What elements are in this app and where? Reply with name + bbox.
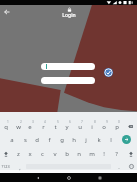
button[interactable]: Submit xyxy=(104,68,113,77)
staticText: , xyxy=(19,164,21,172)
staticText: m xyxy=(89,150,95,158)
staticText: . xyxy=(118,163,120,171)
button[interactable]: Home xyxy=(64,173,73,182)
button[interactable]: ! xyxy=(98,147,110,161)
button[interactable]: x xyxy=(24,147,36,161)
staticText: e xyxy=(28,123,32,131)
staticText: Login xyxy=(62,12,76,19)
staticText: y xyxy=(65,123,69,131)
staticText: w xyxy=(16,123,21,131)
staticText: k xyxy=(97,136,101,144)
staticText: p xyxy=(115,123,119,131)
button[interactable]: z xyxy=(12,147,24,161)
staticText: q xyxy=(4,123,8,131)
staticText: 2 xyxy=(20,120,22,123)
button[interactable]: r xyxy=(37,120,49,134)
button[interactable]: g xyxy=(56,133,68,147)
button[interactable]: v xyxy=(49,147,61,161)
staticText: j xyxy=(85,136,87,144)
button[interactable]: Backspace xyxy=(124,119,137,133)
button[interactable]: Shift xyxy=(0,147,12,161)
button[interactable]: n xyxy=(73,147,85,161)
button[interactable]: ?123 xyxy=(0,159,12,173)
button[interactable]: f xyxy=(43,133,55,147)
button[interactable]: k xyxy=(93,133,105,147)
button[interactable]: y xyxy=(61,120,73,134)
staticText: i xyxy=(91,123,93,131)
staticText: x xyxy=(28,150,32,158)
button[interactable]: Navigate up xyxy=(1,6,12,17)
button[interactable] xyxy=(41,63,95,70)
button[interactable] xyxy=(41,77,95,84)
staticText: r xyxy=(42,123,45,131)
button[interactable]: . xyxy=(114,160,123,174)
button[interactable]: u xyxy=(74,120,86,134)
button[interactable]: d xyxy=(31,133,43,147)
button[interactable]: h xyxy=(68,133,80,147)
button[interactable]: t xyxy=(49,120,61,134)
staticText: l xyxy=(110,136,112,144)
staticText: f xyxy=(48,136,51,144)
staticText: t xyxy=(54,123,57,131)
staticText: o xyxy=(102,123,106,131)
staticText: h xyxy=(72,136,76,144)
staticText: s xyxy=(24,136,27,144)
button[interactable]: i xyxy=(86,120,98,134)
staticText: u xyxy=(78,123,82,131)
staticText: 3 xyxy=(32,120,34,123)
staticText: ? xyxy=(115,150,118,158)
staticText: z xyxy=(17,150,20,158)
staticText: v xyxy=(53,150,57,158)
staticText: a xyxy=(10,136,14,144)
button[interactable]: e xyxy=(24,120,36,134)
button[interactable]: p xyxy=(111,120,123,134)
button[interactable]: o xyxy=(98,120,110,134)
staticText: 5 xyxy=(57,120,59,123)
button[interactable]: j xyxy=(80,133,92,147)
button[interactable]: Emoji xyxy=(125,159,137,173)
staticText: d xyxy=(35,136,39,144)
button[interactable]: Delete xyxy=(124,147,137,161)
staticText: ?123 xyxy=(1,164,10,169)
staticText: n xyxy=(77,150,81,158)
staticText: 7 xyxy=(81,120,83,123)
button[interactable]: l xyxy=(105,133,117,147)
button[interactable]: Enter xyxy=(122,135,131,144)
button[interactable]: a xyxy=(6,133,18,147)
staticText: g xyxy=(60,136,64,144)
staticText: c xyxy=(41,150,44,158)
staticText: 4 xyxy=(44,120,46,123)
staticText: b xyxy=(65,150,69,158)
button[interactable]: , xyxy=(15,161,24,175)
button[interactable]: c xyxy=(36,147,48,161)
staticText: 9 xyxy=(106,120,108,123)
button[interactable]: Back xyxy=(33,173,42,182)
staticText: 1 xyxy=(7,120,9,123)
button[interactable]: ? xyxy=(110,147,122,161)
button[interactable]: Recent apps xyxy=(95,173,104,182)
button[interactable]: b xyxy=(61,147,73,161)
button[interactable]: m xyxy=(86,147,98,161)
staticText: 6 xyxy=(69,120,71,123)
button[interactable]: s xyxy=(19,133,31,147)
button[interactable]: q xyxy=(0,120,12,134)
button[interactable]: w xyxy=(12,120,24,134)
staticText: ! xyxy=(103,150,105,158)
